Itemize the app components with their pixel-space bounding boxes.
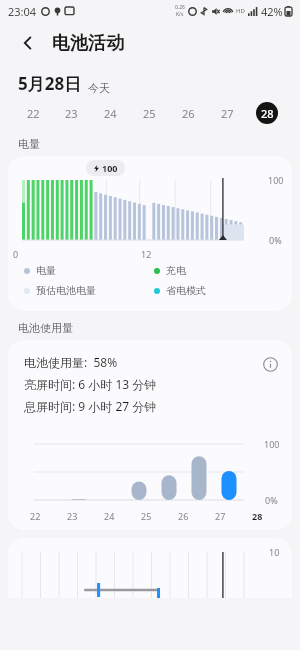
- staticText: 22: [30, 510, 41, 522]
- staticText: 电池使用量: [18, 321, 73, 335]
- staticText: 22: [27, 106, 40, 121]
- staticText: 12: [141, 248, 152, 260]
- staticText: 28: [252, 510, 263, 522]
- staticText: 100: [102, 162, 118, 174]
- staticText: 23: [65, 106, 78, 121]
- staticText: 电量: [36, 264, 56, 277]
- staticText: 100: [268, 174, 284, 186]
- button[interactable]: Back: [12, 27, 44, 59]
- staticText: 今天: [88, 81, 110, 95]
- staticText: 27: [221, 106, 234, 121]
- staticText: 省电模式: [166, 284, 206, 297]
- staticText: 24: [104, 510, 115, 522]
- button[interactable]: 24: [91, 95, 130, 131]
- staticText: 25: [143, 106, 156, 121]
- staticText: 亮屏时间: 6 小时 13 分钟: [24, 376, 157, 392]
- staticText: 息屏时间: 9 小时 27 分钟: [24, 398, 157, 414]
- staticText: 0%: [265, 494, 278, 506]
- staticText: 28: [261, 106, 274, 121]
- staticText: 0%: [269, 234, 282, 246]
- button[interactable]: 22: [14, 95, 52, 131]
- button[interactable]: 26: [169, 95, 208, 131]
- staticText: 5月28日: [18, 72, 82, 95]
- staticText: 100: [264, 438, 280, 450]
- staticText: 23:04: [8, 4, 37, 19]
- staticText: 充电: [166, 264, 186, 277]
- button[interactable]: 100: [8, 156, 292, 311]
- staticText: 预估电池电量: [36, 284, 96, 297]
- staticText: 23: [67, 510, 78, 522]
- staticText: 10: [269, 546, 280, 558]
- staticText: 26: [178, 510, 189, 522]
- staticText: K/s: [176, 11, 184, 18]
- staticText: 0.26: [175, 4, 185, 11]
- staticText: 42%: [261, 4, 283, 19]
- staticText: 26: [182, 106, 195, 121]
- button[interactable]: 25: [130, 95, 169, 131]
- staticText: 电池使用量: 58%: [24, 354, 118, 370]
- staticText: 24: [104, 106, 117, 121]
- button[interactable]: 23: [52, 95, 91, 131]
- staticText: HD: [236, 7, 245, 15]
- button[interactable]: 27: [208, 95, 247, 131]
- staticText: 25: [141, 510, 152, 522]
- staticText: 电量: [18, 137, 40, 151]
- staticText: 电池活动: [52, 32, 124, 55]
- staticText: 27: [215, 510, 226, 522]
- button[interactable]: 28: [247, 95, 286, 131]
- staticText: 0: [13, 248, 19, 260]
- button[interactable]: Info: [258, 352, 282, 376]
